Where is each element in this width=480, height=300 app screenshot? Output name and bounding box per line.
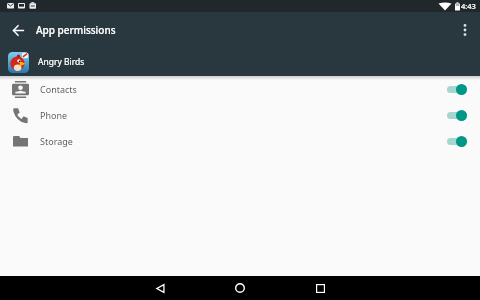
button[interactable] bbox=[148, 276, 172, 300]
staticText: Storage bbox=[40, 135, 73, 147]
staticText: 4:43 bbox=[461, 1, 476, 11]
staticText: Phone bbox=[40, 109, 68, 121]
button[interactable] bbox=[228, 276, 252, 300]
button[interactable] bbox=[447, 134, 467, 148]
button[interactable] bbox=[447, 82, 467, 96]
button[interactable] bbox=[447, 108, 467, 122]
button[interactable]: Phone bbox=[0, 102, 480, 128]
staticText: Contacts bbox=[40, 83, 77, 95]
staticText: Angry Birds bbox=[38, 56, 85, 68]
button[interactable]: Storage bbox=[0, 128, 480, 154]
button[interactable] bbox=[308, 276, 332, 300]
button[interactable]: Angry Birds bbox=[0, 48, 480, 76]
button[interactable] bbox=[0, 12, 36, 48]
button[interactable] bbox=[450, 15, 480, 45]
staticText: App permissions bbox=[36, 23, 116, 37]
button[interactable]: Contacts bbox=[0, 76, 480, 102]
